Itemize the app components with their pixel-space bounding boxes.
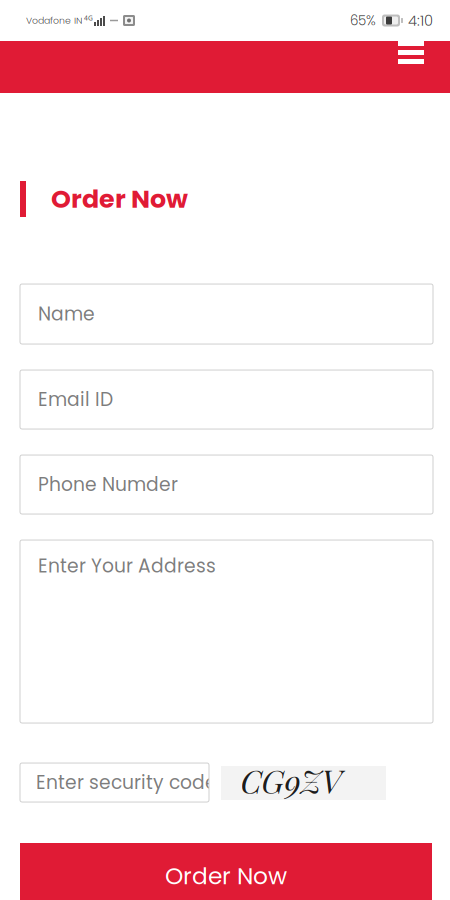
button[interactable]: Email ID [20, 370, 433, 429]
staticText: Enter Your Address [38, 553, 216, 579]
staticText: CG9ZV [240, 759, 341, 802]
button[interactable]: Order Now [20, 843, 432, 900]
staticText: Phone Numder [38, 471, 178, 497]
button[interactable]: Name [20, 284, 433, 344]
staticText: Order Now [51, 181, 188, 217]
staticText: 4G [84, 14, 93, 22]
button[interactable]: Enter Your Address [20, 540, 433, 723]
button[interactable]: Menu [389, 41, 433, 87]
staticText: Vodafone IN [26, 14, 82, 27]
button[interactable]: Phone Numder [20, 455, 433, 514]
staticText: Name [38, 301, 95, 327]
staticText: Order Now [165, 860, 287, 892]
staticText: Email ID [38, 386, 113, 412]
staticText: 4:10 [408, 10, 433, 31]
staticText: 65% [350, 11, 376, 30]
button[interactable]: Enter security code [20, 763, 209, 802]
staticText: Enter security code [36, 769, 217, 795]
